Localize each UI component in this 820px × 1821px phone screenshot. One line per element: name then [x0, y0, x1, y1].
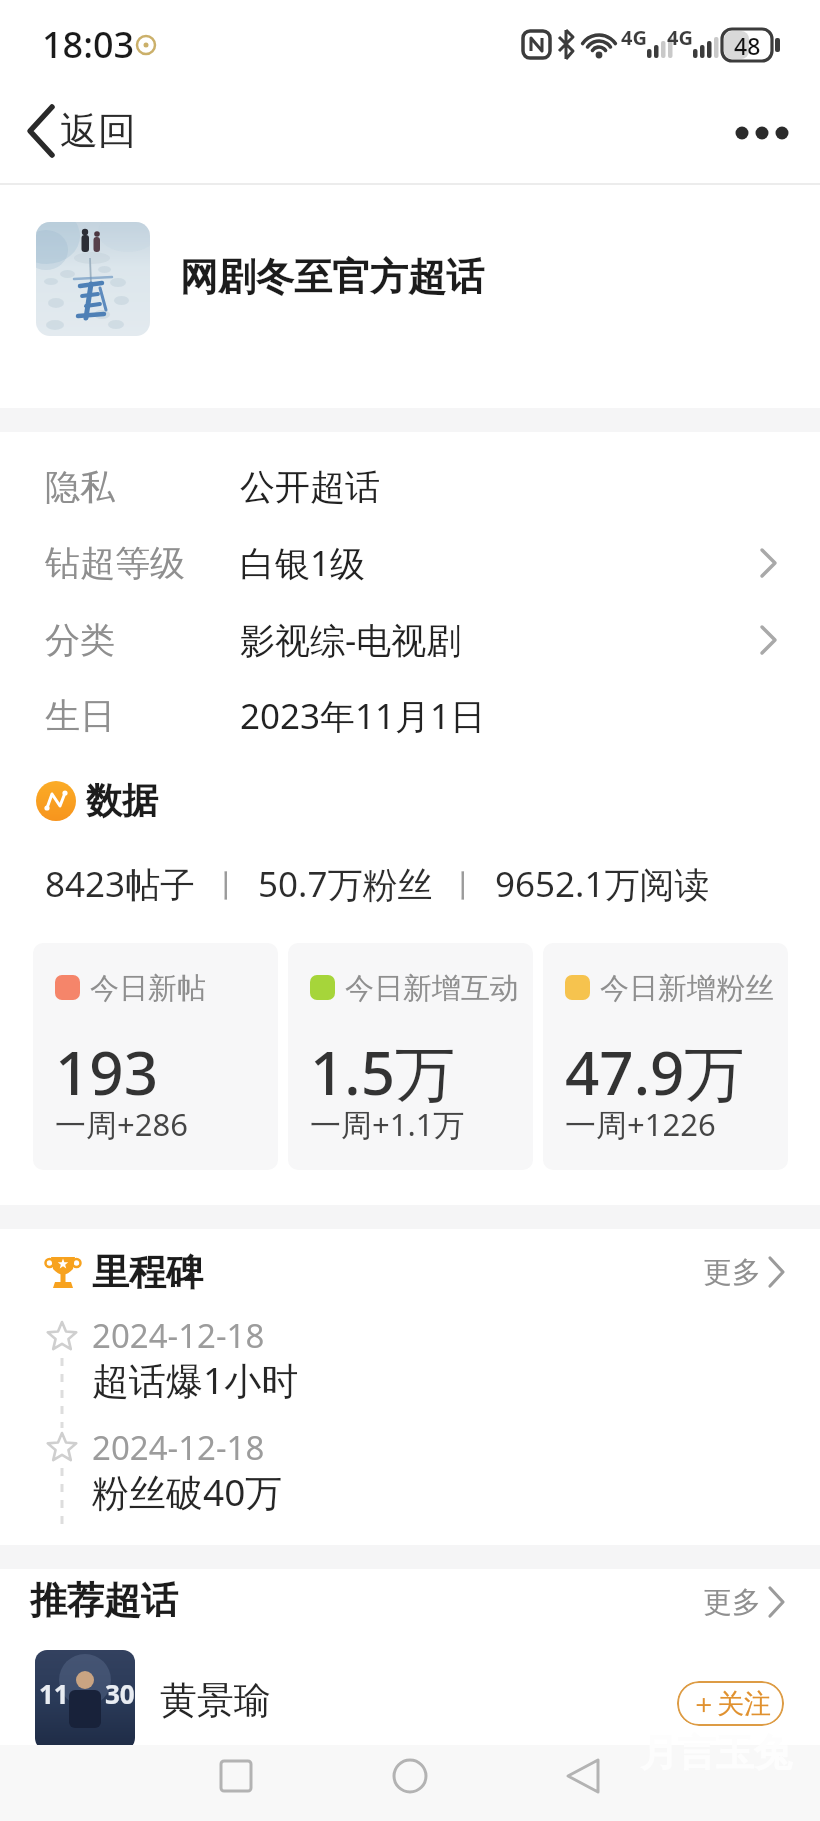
staticText: ＋关注: [690, 1687, 771, 1721]
staticText: 分类: [45, 618, 115, 662]
staticText: 8423帖子: [45, 860, 196, 908]
button[interactable]: [33, 943, 278, 1170]
button[interactable]: ＋关注: [677, 1681, 784, 1726]
staticText: 今日新增粉丝: [600, 970, 774, 1007]
button[interactable]: [0, 525, 820, 601]
staticText: 一周+1226: [565, 1103, 716, 1145]
staticText: 钻超等级: [45, 541, 185, 585]
staticText: 2024-12-18: [92, 1313, 265, 1358]
staticText: 18:03: [42, 20, 135, 69]
staticText: 47.9万: [565, 1031, 745, 1113]
staticText: 推荐超话: [30, 1577, 178, 1624]
staticText: 超话爆1小时: [92, 1354, 299, 1405]
button[interactable]: [288, 943, 533, 1170]
button[interactable]: [0, 602, 820, 678]
staticText: 丨: [433, 864, 495, 905]
staticText: 今日新增互动: [345, 970, 519, 1007]
button[interactable]: [0, 678, 820, 754]
staticText: 隐私: [45, 465, 115, 509]
button[interactable]: [720, 110, 810, 160]
staticText: 影视综-电视剧: [240, 616, 462, 664]
staticText: 11: [39, 1676, 69, 1711]
button[interactable]: [36, 222, 150, 336]
staticText: 网剧冬至官方超话: [180, 253, 484, 301]
staticText: 返回: [60, 107, 136, 155]
staticText: 50.7万粉丝: [258, 860, 433, 908]
staticText: 2023年11月1日: [240, 692, 486, 740]
staticText: 公开超话: [240, 465, 380, 509]
staticText: 4G: [667, 24, 693, 51]
button[interactable]: [690, 1577, 800, 1627]
staticText: 4G: [621, 24, 647, 51]
staticText: 一周+286: [55, 1103, 188, 1145]
staticText: 1.5万: [310, 1031, 455, 1113]
staticText: 更多: [703, 1254, 761, 1291]
button[interactable]: [20, 100, 170, 164]
staticText: 今日新帖: [90, 970, 206, 1007]
staticText: 更多: [703, 1584, 761, 1621]
button[interactable]: [543, 943, 788, 1170]
button[interactable]: [690, 1247, 800, 1297]
button[interactable]: [0, 449, 820, 525]
staticText: 里程碑: [92, 1249, 203, 1296]
staticText: 9652.1万阅读: [495, 860, 710, 908]
button[interactable]: 11: [35, 1650, 135, 1750]
staticText: 一周+1.1万: [310, 1103, 465, 1145]
staticText: 黄景瑜: [160, 1677, 271, 1724]
staticText: 生日: [45, 694, 115, 738]
button[interactable]: [553, 1746, 613, 1806]
staticText: 193: [55, 1031, 158, 1113]
staticText: 丨: [196, 864, 258, 905]
staticText: 白银1级: [240, 539, 366, 587]
staticText: 2024-12-18: [92, 1425, 265, 1470]
staticText: 粉丝破40万: [92, 1466, 283, 1517]
staticText: 48: [734, 30, 761, 61]
button[interactable]: [380, 1746, 440, 1806]
staticText: 30: [105, 1676, 135, 1711]
button[interactable]: [206, 1746, 266, 1806]
staticText: 数据: [86, 778, 158, 823]
